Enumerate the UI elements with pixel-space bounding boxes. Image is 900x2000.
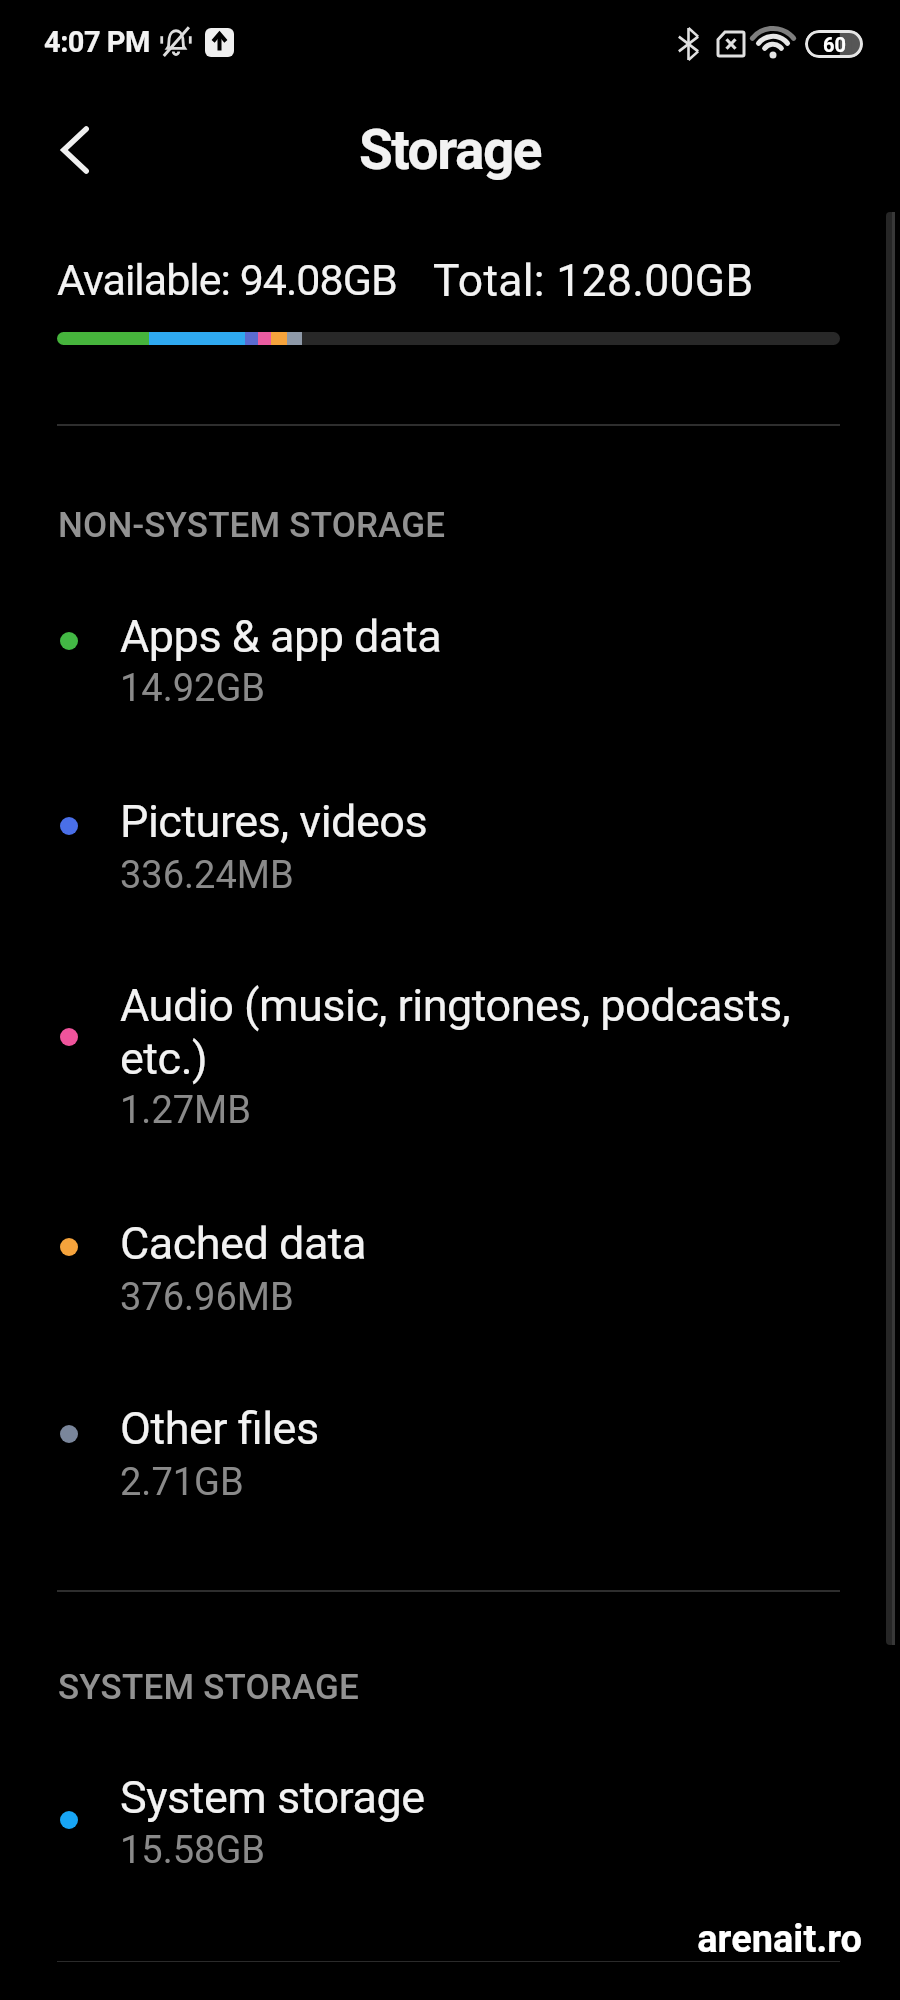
staticText: NON-SYSTEM STORAGE bbox=[58, 505, 446, 546]
staticText: 2.71GB bbox=[120, 1460, 244, 1505]
staticText: 376.96MB bbox=[120, 1275, 294, 1320]
button[interactable]: Pictures, videos bbox=[120, 795, 860, 848]
button[interactable]: System storage bbox=[120, 1771, 860, 1824]
button[interactable]: Apps & app data bbox=[120, 610, 860, 663]
staticText: Available: 94.08GB bbox=[57, 255, 397, 305]
staticText: 15.58GB bbox=[120, 1828, 266, 1873]
staticText: SYSTEM STORAGE bbox=[58, 1667, 360, 1708]
staticText: arenait.ro bbox=[0, 1917, 862, 1962]
staticText: 4:07 PM bbox=[44, 25, 150, 59]
staticText: Pictures, videos bbox=[120, 795, 428, 848]
staticText: Total: 128.00GB bbox=[433, 255, 754, 307]
staticText: 14.92GB bbox=[120, 666, 266, 711]
staticText: System storage bbox=[120, 1771, 425, 1824]
staticText: Audio (music, ringtones, podcasts, etc.) bbox=[120, 979, 791, 1085]
button[interactable]: Audio (music, ringtones, podcasts, etc.) bbox=[120, 979, 860, 1085]
staticText: 336.24MB bbox=[120, 853, 294, 898]
staticText: Other files bbox=[120, 1402, 319, 1455]
button[interactable]: Cached data bbox=[120, 1217, 860, 1270]
staticText: Storage bbox=[0, 118, 900, 182]
staticText: 1.27MB bbox=[120, 1088, 251, 1133]
button[interactable]: Other files bbox=[120, 1402, 860, 1455]
staticText: Apps & app data bbox=[120, 610, 442, 663]
staticText: 60 bbox=[823, 33, 846, 56]
button[interactable] bbox=[40, 115, 110, 185]
staticText: Cached data bbox=[120, 1217, 367, 1270]
